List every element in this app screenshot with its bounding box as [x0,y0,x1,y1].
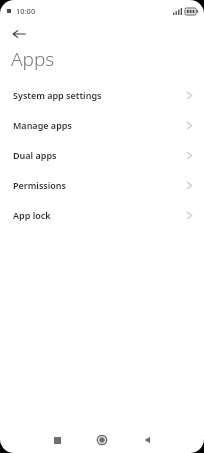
button[interactable]: Home [89,427,115,453]
staticText: System app settings [13,89,102,101]
staticText: Manage apps [13,119,72,131]
button[interactable]: System app settings [0,80,204,110]
button[interactable]: Dual apps [0,140,204,170]
staticText: 10:00 [16,6,36,16]
button[interactable]: Recent apps [44,427,70,453]
staticText: Apps [11,46,55,72]
button[interactable]: Manage apps [0,110,204,140]
button[interactable]: App lock [0,200,204,230]
button[interactable]: Back [6,22,32,46]
staticText: Dual apps [13,149,57,161]
staticText: App lock [13,209,51,221]
button[interactable]: Permissions [0,170,204,200]
button[interactable]: Back [134,427,160,453]
staticText: Permissions [13,179,67,191]
